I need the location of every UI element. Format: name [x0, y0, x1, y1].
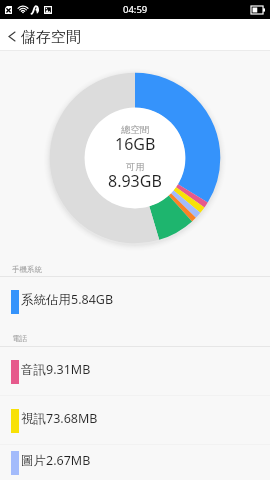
staticText: 8.93GB [108, 170, 162, 192]
staticText: 可用 [126, 161, 145, 173]
staticText: 圖片2.67MB [21, 452, 91, 469]
staticText: 16GB [115, 133, 156, 155]
staticText: 手機系統 [12, 265, 42, 274]
staticText: 儲存空間 [21, 28, 81, 47]
staticText: 視訊73.68MB [21, 410, 98, 427]
button[interactable]: 音訊9.31MB [0, 347, 270, 396]
button[interactable]: 視訊73.68MB [0, 396, 270, 445]
staticText: 04:59 [123, 3, 148, 16]
staticText: 音訊9.31MB [21, 361, 91, 378]
button[interactable]: Back [1, 20, 23, 52]
button[interactable]: 系統佔用5.84GB [0, 277, 270, 326]
button[interactable]: 圖片2.67MB [0, 445, 270, 480]
staticText: 系統佔用5.84GB [21, 291, 114, 308]
staticText: 電話 [12, 334, 27, 343]
staticText: 總空間 [121, 124, 150, 136]
